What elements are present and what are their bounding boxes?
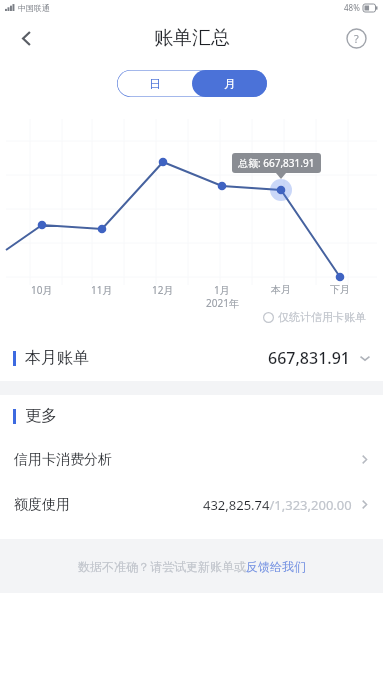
- staticText: 账单汇总: [154, 26, 230, 50]
- button[interactable]: Help: [337, 19, 375, 57]
- staticText: 中国联通: [18, 3, 50, 13]
- staticText: 数据不准确？请尝试更新账单或反馈给我们: [78, 559, 306, 574]
- staticText: 11月: [91, 283, 113, 297]
- staticText: 2021年: [206, 296, 239, 310]
- button[interactable]: 仅统计信用卡账单: [259, 306, 370, 328]
- button[interactable]: 信用卡消费分析: [0, 437, 383, 482]
- button[interactable]: 本月账单: [0, 337, 383, 379]
- staticText: 总额: 667,831.91: [238, 156, 315, 170]
- staticText: ?: [354, 31, 359, 46]
- button[interactable]: Back: [7, 19, 45, 57]
- button[interactable]: 日: [117, 70, 192, 97]
- button[interactable]: 数据不准确？请尝试更新账单或反馈给我们: [72, 553, 312, 580]
- staticText: 下月: [330, 283, 350, 296]
- staticText: 10月: [31, 283, 53, 297]
- staticText: 48%: [344, 2, 360, 13]
- staticText: 额度使用: [14, 496, 70, 514]
- staticText: 信用卡消费分析: [14, 451, 112, 469]
- button[interactable]: 月: [192, 70, 267, 97]
- staticText: 更多: [25, 406, 57, 426]
- staticText: 本月: [271, 283, 291, 296]
- staticText: 1月: [214, 283, 230, 297]
- staticText: 日: [149, 76, 161, 91]
- staticText: 仅统计信用卡账单: [278, 310, 366, 324]
- staticText: 月: [224, 76, 236, 91]
- staticText: 432,825.74/1,323,200.00: [203, 496, 352, 514]
- button[interactable]: 额度使用: [0, 482, 383, 527]
- staticText: 667,831.91: [268, 347, 350, 369]
- staticText: 12月: [152, 283, 174, 297]
- staticText: 本月账单: [25, 348, 89, 368]
